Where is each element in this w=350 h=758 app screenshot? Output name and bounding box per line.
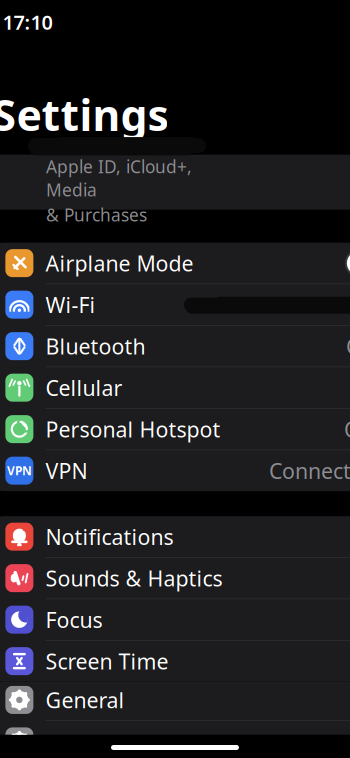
staticText: On: [346, 332, 350, 360]
staticText: Airplane Mode: [45, 249, 193, 277]
button[interactable]: Cellular: [0, 367, 350, 409]
button[interactable]: Focus: [0, 599, 350, 641]
staticText: General: [45, 686, 124, 714]
staticText: Personal Hotspot: [45, 415, 220, 443]
staticText: VPN: [7, 463, 32, 479]
button[interactable]: Apple ID, iCloud+, Media: [0, 143, 350, 210]
button[interactable]: General: [0, 679, 350, 721]
button[interactable]: Screen Time: [0, 641, 350, 682]
staticText: & Purchases: [46, 203, 147, 226]
button[interactable]: VPN: [0, 450, 350, 491]
staticText: Cellular: [45, 373, 122, 402]
staticText: Connected: [269, 456, 350, 485]
staticText: Sounds & Haptics: [45, 564, 222, 592]
staticText: VPN: [45, 456, 87, 485]
staticText: Settings: [0, 86, 168, 143]
staticText: Bluetooth: [45, 332, 145, 360]
button[interactable]: Sounds & Haptics: [0, 558, 350, 599]
staticText: 17:10: [2, 9, 52, 35]
button[interactable]: Notifications: [0, 516, 350, 558]
staticText: Focus: [45, 605, 102, 634]
staticText: Apple ID, iCloud+, Media: [46, 155, 192, 201]
button[interactable]: Bluetooth: [0, 326, 350, 367]
button[interactable]: Personal Hotspot: [0, 409, 350, 450]
staticText: Notifications: [45, 522, 173, 551]
staticText: Wi-Fi: [45, 290, 95, 319]
staticText: Screen Time: [45, 647, 168, 675]
staticText: Off: [344, 415, 350, 443]
